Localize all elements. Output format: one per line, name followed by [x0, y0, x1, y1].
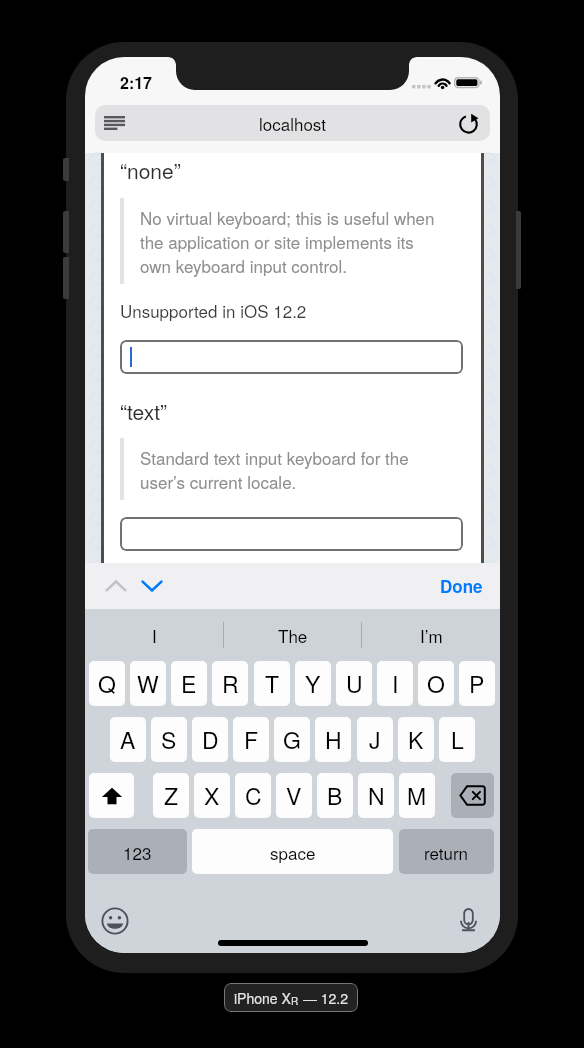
button[interactable]: P [459, 661, 495, 706]
staticText: I’m [420, 623, 443, 647]
button[interactable]: Y [295, 661, 331, 706]
button[interactable] [120, 517, 463, 551]
staticText: return [424, 840, 469, 864]
button[interactable]: W [130, 661, 166, 706]
staticText: E [181, 667, 197, 700]
staticText: P [469, 667, 485, 700]
button[interactable]: U [336, 661, 372, 706]
staticText: space [270, 840, 316, 864]
button[interactable]: H [315, 717, 351, 762]
staticText: N [368, 779, 385, 812]
staticText: The [278, 623, 308, 647]
staticText: iPhone X [234, 988, 291, 1008]
staticText: localhost [259, 111, 326, 135]
button[interactable]: T [254, 661, 290, 706]
staticText: I [392, 667, 399, 700]
button[interactable]: F [233, 717, 269, 762]
staticText: R [291, 994, 299, 1008]
staticText: — 12.2 [299, 988, 349, 1008]
button[interactable]: G [274, 717, 310, 762]
button[interactable]: Shift [89, 773, 134, 818]
staticText: A [120, 723, 136, 756]
staticText: the application or site implements its [140, 229, 414, 253]
button[interactable]: I’m [362, 609, 500, 660]
staticText: V [286, 779, 302, 812]
button[interactable]: S [151, 717, 187, 762]
staticText: M [407, 779, 427, 812]
staticText: O [427, 667, 445, 700]
staticText: Q [98, 667, 116, 700]
staticText: Z [164, 779, 179, 812]
button[interactable]: The [224, 609, 362, 660]
button[interactable]: M [399, 773, 435, 818]
staticText: user’s current locale. [140, 469, 297, 493]
staticText: K [408, 723, 424, 756]
staticText: Standard text input keyboard for the [140, 445, 409, 469]
button[interactable]: E [171, 661, 207, 706]
staticText: H [325, 723, 342, 756]
button[interactable]: V [276, 773, 312, 818]
staticText: 123 [123, 840, 152, 864]
staticText: G [283, 723, 301, 756]
staticText: Y [305, 667, 321, 700]
button[interactable]: Reader view [95, 105, 133, 141]
button[interactable]: Q [89, 661, 125, 706]
button[interactable]: I [377, 661, 413, 706]
button[interactable]: K [398, 717, 434, 762]
staticText: 2:17 [120, 71, 153, 94]
staticText: “text” [120, 396, 167, 426]
button[interactable]: O [418, 661, 454, 706]
staticText: C [245, 779, 262, 812]
button[interactable] [120, 340, 463, 374]
button[interactable]: A [110, 717, 146, 762]
button[interactable]: Done [440, 564, 483, 608]
button[interactable]: space [192, 829, 393, 874]
button[interactable]: Reload [449, 105, 487, 141]
button[interactable]: C [235, 773, 271, 818]
button[interactable]: J [357, 717, 393, 762]
staticText: “none” [120, 155, 181, 185]
button[interactable]: B [317, 773, 353, 818]
staticText: B [327, 779, 343, 812]
staticText: S [161, 723, 177, 756]
button[interactable]: R [212, 661, 248, 706]
staticText: L [451, 723, 464, 756]
button[interactable]: Next field [133, 564, 171, 608]
button[interactable]: Backspace [451, 773, 494, 818]
staticText: R [222, 667, 239, 700]
button[interactable]: X [194, 773, 230, 818]
staticText: Unsupported in iOS 12.2 [120, 298, 307, 322]
staticText: T [265, 667, 280, 700]
staticText: X [204, 779, 220, 812]
button[interactable]: 123 [88, 829, 187, 874]
staticText: F [244, 723, 259, 756]
button[interactable]: Previous field [97, 564, 135, 608]
button[interactable]: N [358, 773, 394, 818]
staticText: No virtual keyboard; this is useful when [140, 205, 435, 229]
staticText: J [369, 723, 381, 756]
button[interactable]: Z [153, 773, 189, 818]
staticText: Done [440, 574, 483, 598]
staticText: D [202, 723, 219, 756]
button[interactable]: return [399, 829, 494, 874]
button[interactable]: I [85, 609, 224, 660]
button[interactable]: Emoji keyboard [95, 901, 135, 941]
button[interactable]: Dictation [448, 901, 488, 941]
staticText: I [152, 623, 157, 647]
staticText: U [346, 667, 363, 700]
staticText: own keyboard input control. [140, 253, 348, 277]
button[interactable]: L [439, 717, 475, 762]
button[interactable]: D [192, 717, 228, 762]
staticText: W [137, 667, 159, 700]
button[interactable]: iPhone X [224, 983, 358, 1012]
